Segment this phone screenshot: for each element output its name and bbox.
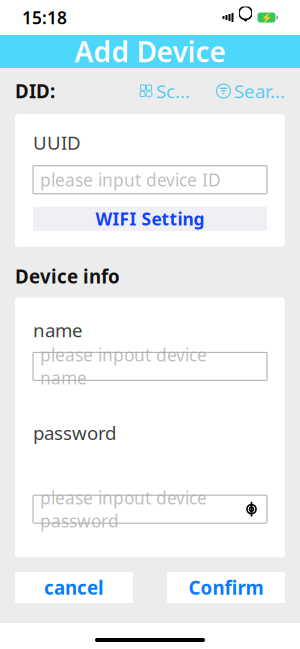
staticText: Sear...	[234, 79, 285, 103]
staticText: UUID	[33, 130, 81, 155]
button[interactable]: Confirm	[167, 572, 285, 603]
staticText: Sc...	[156, 79, 190, 103]
staticText: please input device ID	[40, 168, 221, 191]
button[interactable]: Sc...	[139, 79, 190, 103]
button[interactable]: Show password	[243, 501, 260, 517]
staticText: WIFI Setting	[95, 207, 204, 230]
staticText: cancel	[44, 575, 104, 600]
staticText: 15:18	[22, 6, 67, 29]
button[interactable]: WIFI Setting	[33, 207, 267, 231]
staticText: Confirm	[188, 575, 263, 600]
staticText: please inpout device name	[40, 343, 207, 389]
staticText: Device info	[15, 264, 120, 289]
staticText: DID:	[15, 79, 55, 103]
staticText: please inpout device password	[40, 486, 207, 532]
button[interactable]: cancel	[15, 572, 133, 603]
staticText: name	[33, 318, 83, 342]
staticText: Add Device	[74, 33, 225, 70]
staticText: ⚡	[260, 12, 272, 23]
button[interactable]: Sear...	[216, 79, 285, 103]
staticText: password	[33, 420, 116, 445]
